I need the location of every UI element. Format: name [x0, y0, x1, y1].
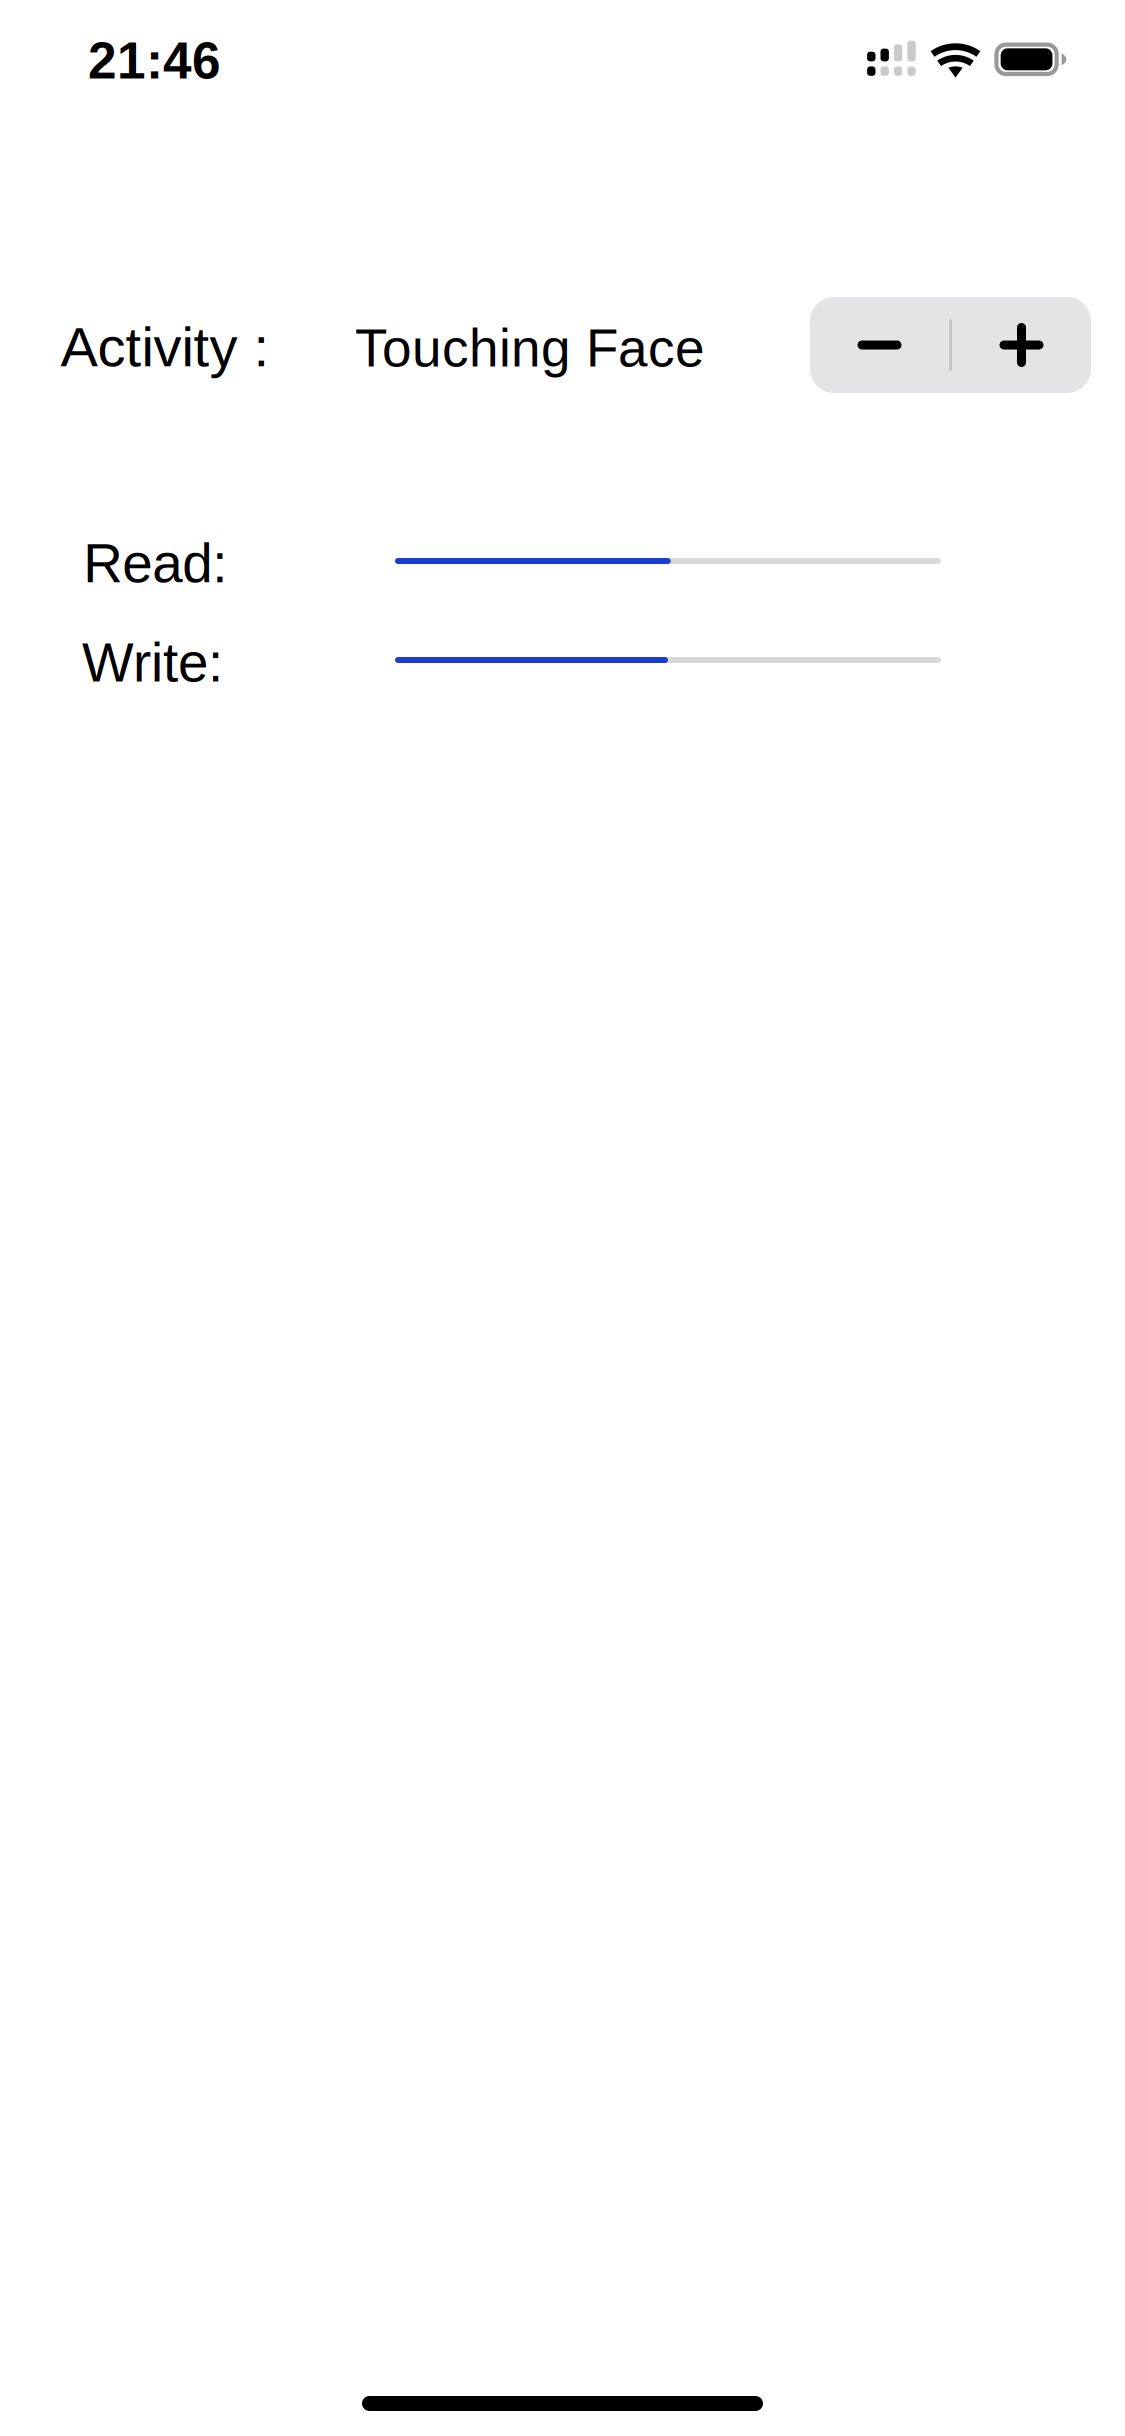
staticText: Write:	[82, 632, 223, 693]
staticText: Read:	[83, 533, 227, 594]
staticText: Activity :	[61, 316, 270, 378]
button[interactable]: Decrease	[810, 297, 949, 393]
button[interactable]: Increase	[952, 297, 1091, 393]
staticText: 21:46	[88, 32, 221, 89]
staticText: Touching Face	[355, 318, 705, 378]
